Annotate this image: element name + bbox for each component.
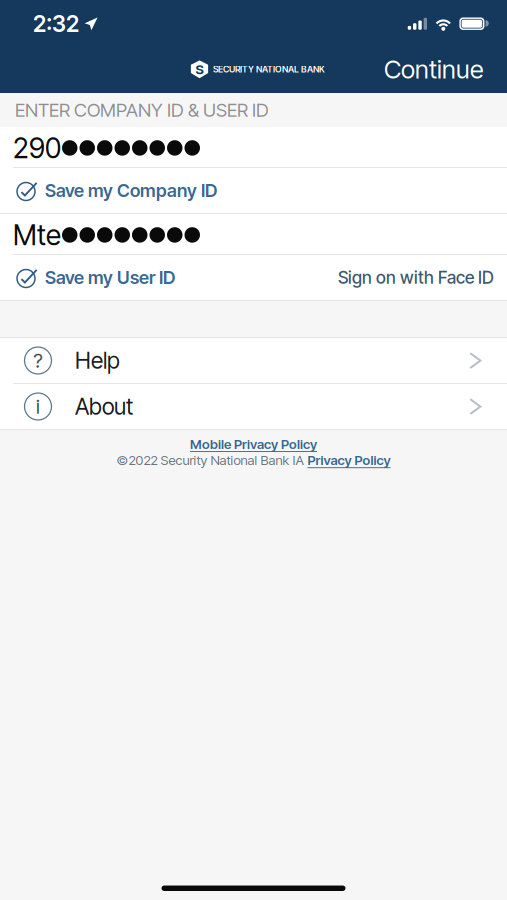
- button[interactable]: Save my Company ID: [0, 168, 225, 213]
- staticText: About: [75, 393, 133, 420]
- staticText: Mte: [13, 218, 61, 252]
- button[interactable]: i: [0, 384, 507, 429]
- staticText: ©2022 Security National Bank IA: [116, 452, 303, 468]
- staticText: 290: [13, 131, 61, 165]
- button[interactable]: Mte: [0, 214, 507, 254]
- staticText: Save my Company ID: [45, 180, 217, 201]
- staticText: 2:32: [33, 10, 79, 37]
- button[interactable]: Sign on with Face ID: [330, 255, 507, 300]
- staticText: S: [195, 61, 203, 77]
- staticText: Continue: [384, 54, 484, 85]
- staticText: i: [36, 394, 40, 419]
- button[interactable]: Privacy Policy: [307, 452, 390, 468]
- staticText: Privacy Policy: [307, 452, 390, 468]
- button[interactable]: Save my User ID: [0, 255, 183, 300]
- button[interactable]: Mobile Privacy Policy: [190, 436, 317, 452]
- staticText: Sign on with Face ID: [338, 267, 494, 288]
- button[interactable]: 290: [0, 127, 507, 167]
- staticText: ?: [33, 348, 42, 373]
- button[interactable]: Continue: [374, 48, 494, 91]
- staticText: Mobile Privacy Policy: [190, 436, 317, 452]
- staticText: ENTER COMPANY ID & USER ID: [15, 99, 269, 121]
- button[interactable]: ?: [0, 338, 507, 383]
- staticText: SECURITY NATIONAL BANK: [213, 64, 325, 75]
- staticText: Help: [75, 347, 120, 374]
- staticText: Save my User ID: [45, 267, 175, 288]
